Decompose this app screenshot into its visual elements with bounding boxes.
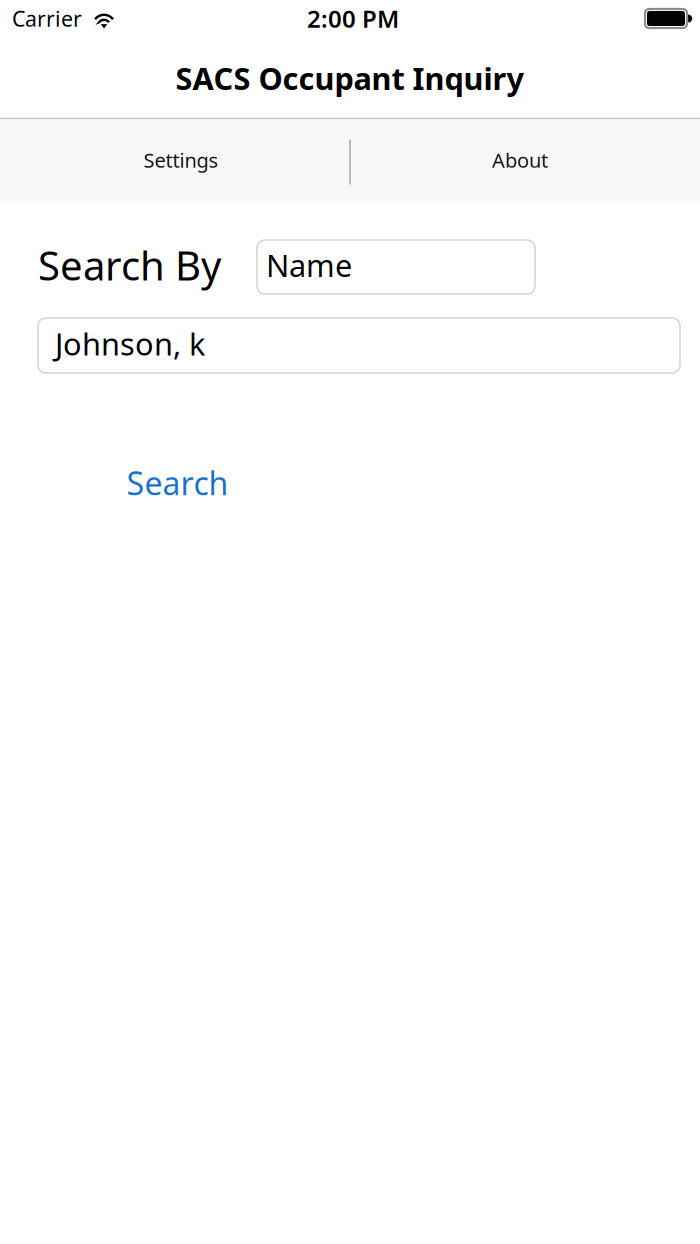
button[interactable]: About xyxy=(350,119,700,201)
button[interactable]: Johnson, k xyxy=(38,318,680,373)
staticText: Search xyxy=(126,461,228,504)
staticText: Search By xyxy=(38,238,221,291)
button[interactable]: Settings xyxy=(0,119,350,201)
staticText: Name xyxy=(266,245,352,285)
button[interactable]: Name xyxy=(257,240,535,294)
staticText: Johnson, k xyxy=(55,323,205,364)
staticText: Carrier xyxy=(12,4,82,33)
staticText: Settings xyxy=(143,147,218,173)
staticText: About xyxy=(492,147,548,173)
button[interactable]: Search xyxy=(118,455,236,510)
staticText: 2:00 PM xyxy=(307,3,399,34)
staticText: SACS Occupant Inquiry xyxy=(175,58,524,98)
